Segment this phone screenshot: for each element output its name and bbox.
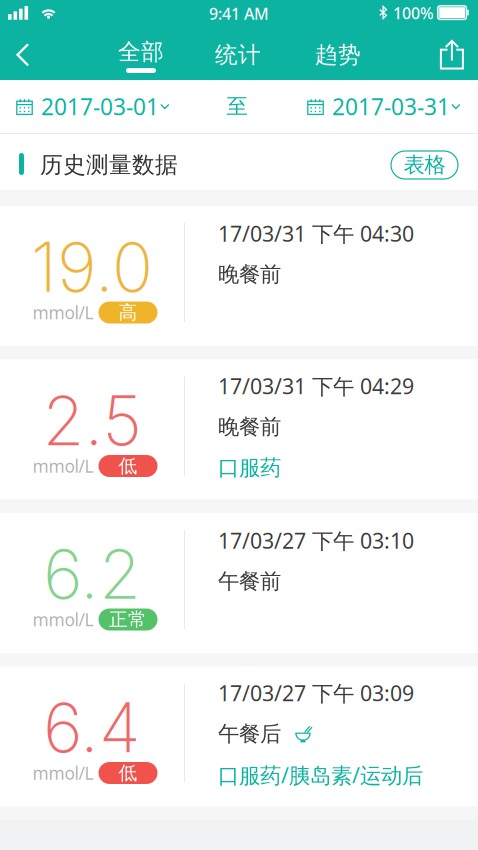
button[interactable]: 19.0 <box>0 206 478 346</box>
staticText: mmol/L <box>32 608 93 631</box>
staticText: 2.5 <box>42 379 141 462</box>
button[interactable]: 2017-03-01 <box>0 80 184 133</box>
staticText: 午餐后 <box>218 721 281 747</box>
staticText: 口服药/胰岛素/运动后 <box>218 761 423 789</box>
button[interactable]: Back <box>0 30 46 80</box>
staticText: 晚餐前 <box>218 414 281 440</box>
staticText: 口服药 <box>218 455 281 481</box>
staticText: 6.2 <box>43 533 141 615</box>
staticText: 6.4 <box>43 686 141 769</box>
staticText: 正常 <box>109 608 147 631</box>
staticText: 低 <box>118 761 137 784</box>
staticText: 2017-03-01 <box>41 91 159 121</box>
staticText: 全部 <box>118 38 164 66</box>
staticText: 统计 <box>215 41 261 69</box>
staticText: mmol/L <box>32 454 93 477</box>
staticText: 趋势 <box>315 41 361 69</box>
staticText: 晚餐前 <box>218 261 281 288</box>
staticText: 低 <box>118 454 137 477</box>
button[interactable]: 趋势 <box>300 30 376 80</box>
button[interactable]: 2.5 <box>0 359 478 499</box>
staticText: 100% <box>393 2 434 24</box>
button[interactable]: 2017-03-31 <box>293 80 471 133</box>
staticText: mmol/L <box>32 301 93 324</box>
staticText: 高 <box>118 301 137 324</box>
staticText: 午餐前 <box>218 568 281 595</box>
staticText: mmol/L <box>32 761 93 784</box>
button[interactable]: 表格 <box>391 151 458 179</box>
button[interactable]: 至 <box>217 80 257 133</box>
staticText: 17/03/27 下午 03:09 <box>218 679 414 707</box>
staticText: 17/03/27 下午 03:10 <box>218 526 414 555</box>
staticText: 9:41 AM <box>209 3 269 24</box>
staticText: 历史测量数据 <box>40 151 178 179</box>
button[interactable]: 统计 <box>200 30 276 80</box>
button[interactable]: Share <box>429 30 475 80</box>
button[interactable]: 6.4 <box>0 666 478 806</box>
staticText: 至 <box>226 93 247 120</box>
staticText: 2017-03-31 <box>332 91 450 121</box>
button[interactable]: 6.2 <box>0 513 478 653</box>
staticText: 17/03/31 下午 04:30 <box>218 219 414 248</box>
button[interactable]: 全部 <box>103 30 179 80</box>
staticText: 17/03/31 下午 04:29 <box>218 372 414 400</box>
staticText: 表格 <box>403 152 445 178</box>
staticText: 19.0 <box>31 226 153 308</box>
